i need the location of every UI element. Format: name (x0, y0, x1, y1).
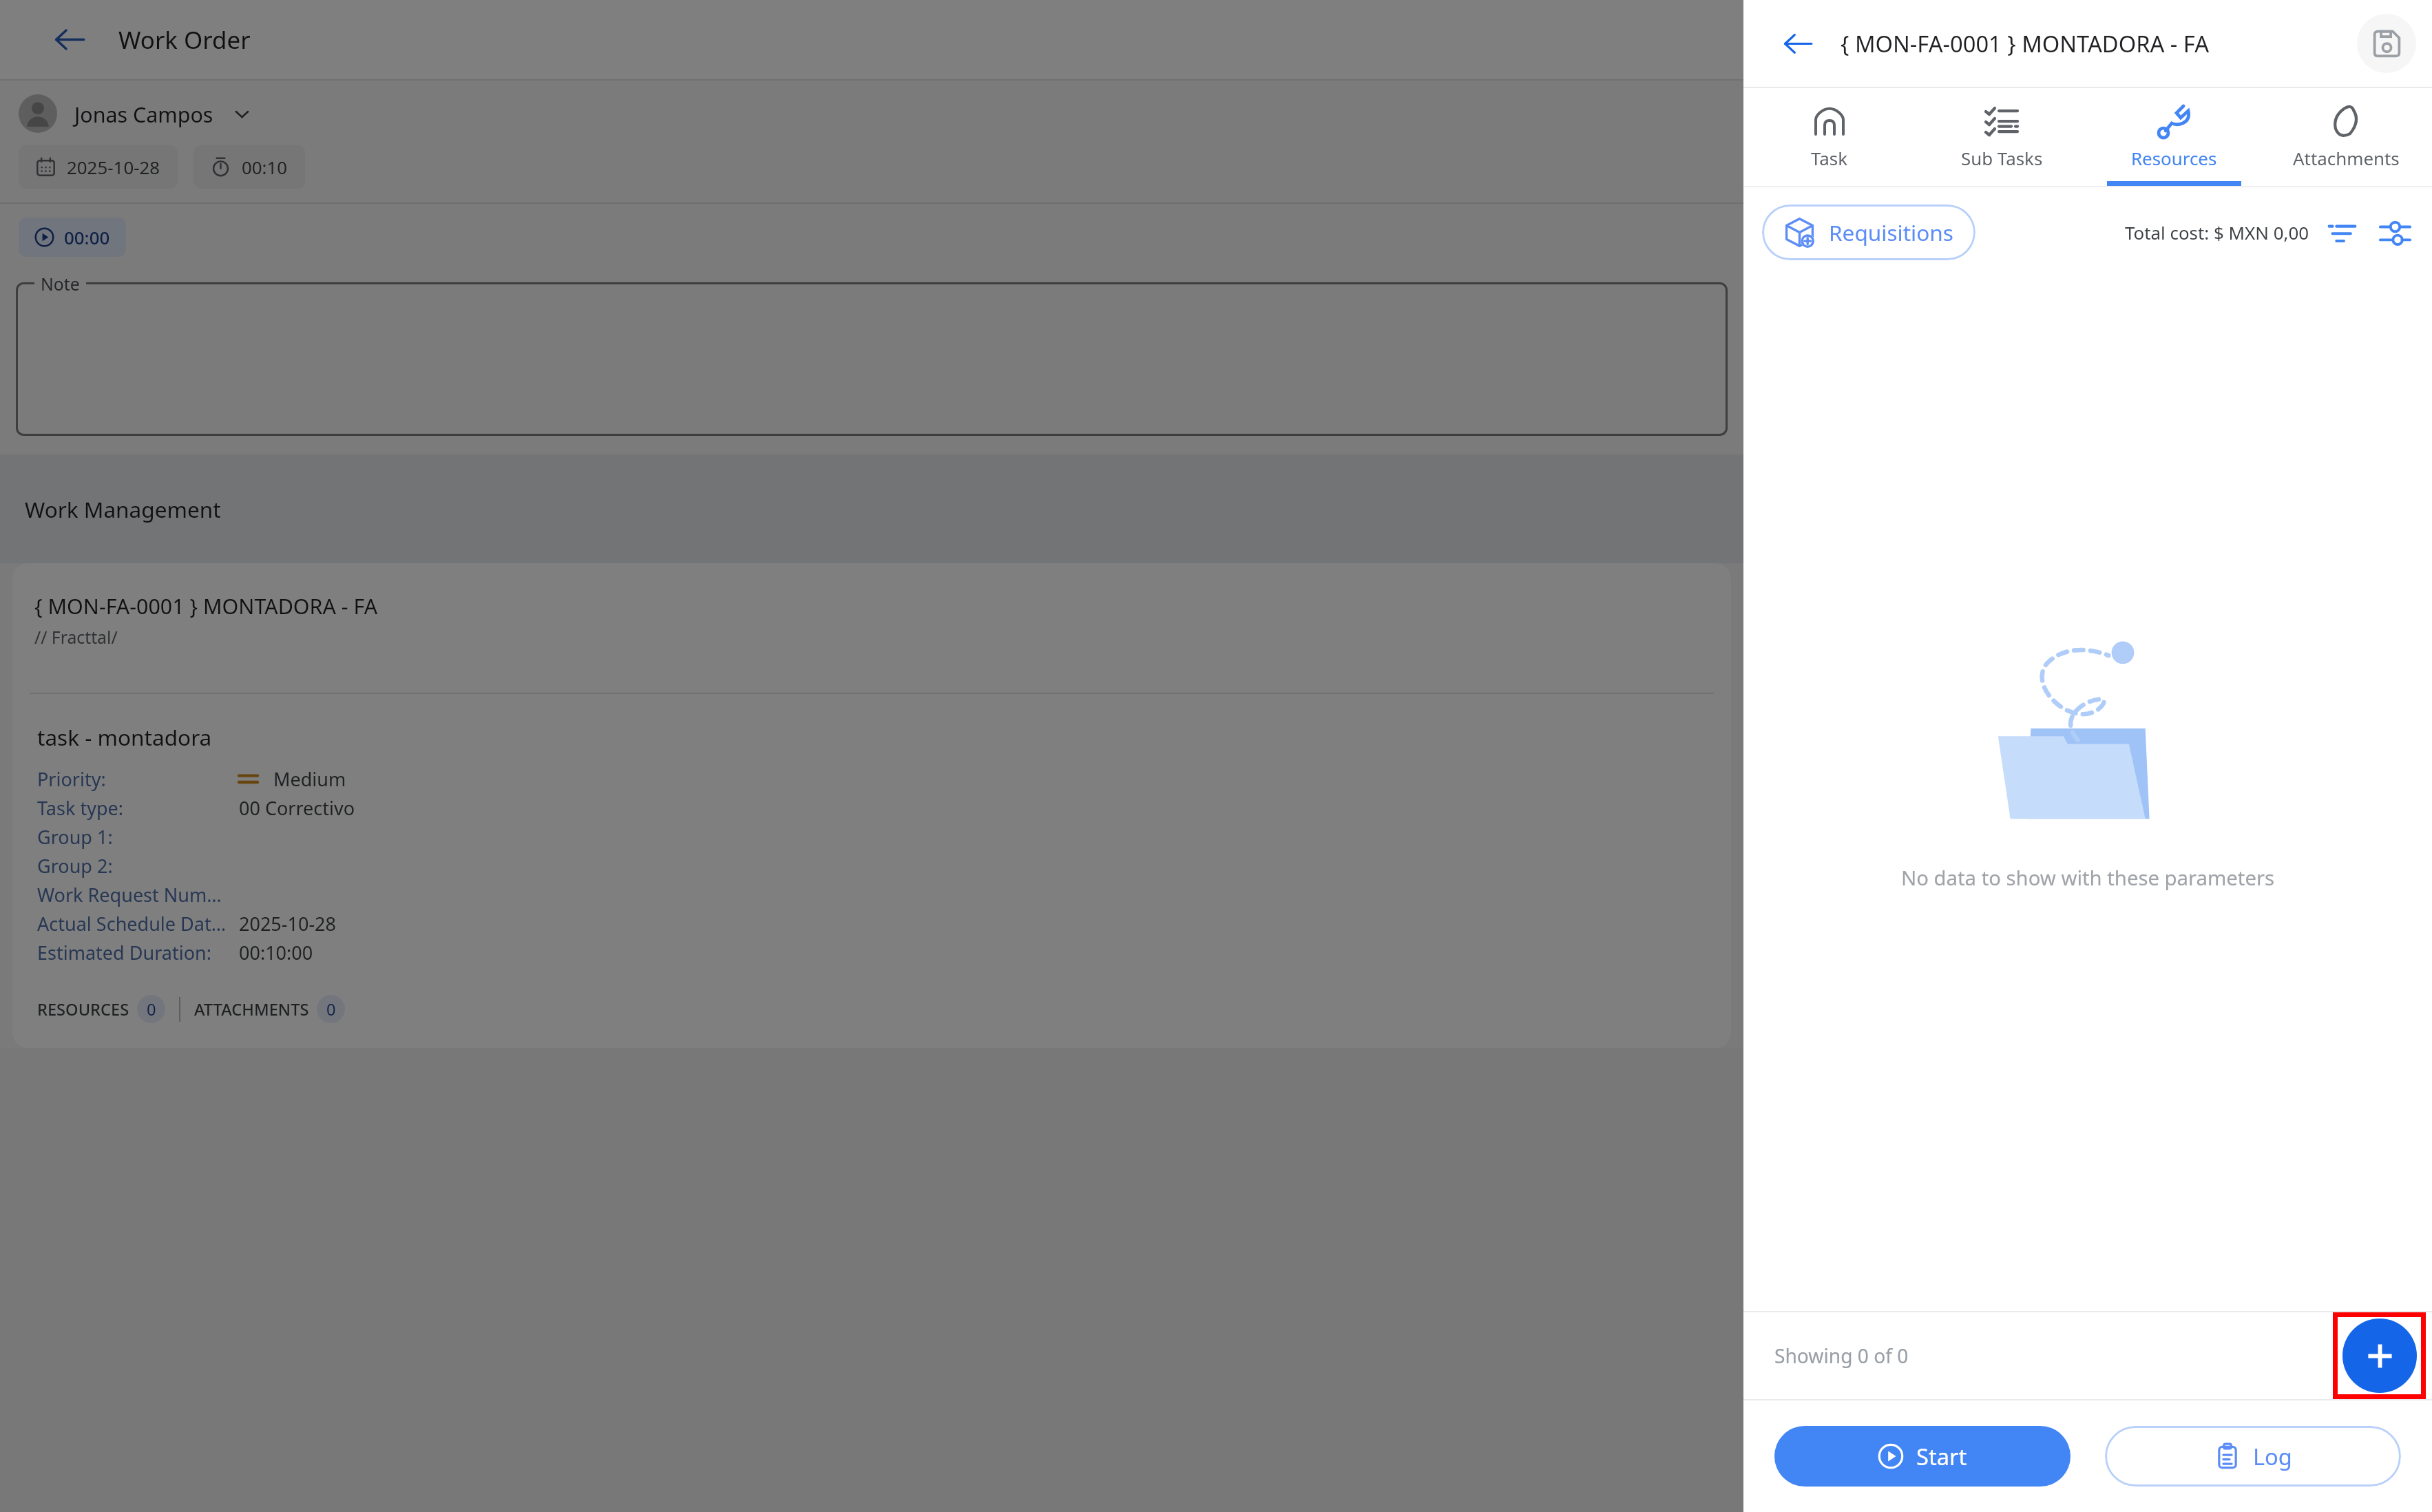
staticText: 0 (326, 998, 336, 1020)
staticText: Total cost: $ MXN 0,00 (2125, 220, 2309, 244)
staticText: Task type: (37, 795, 124, 821)
staticText: { MON-FA-0001 } MONTADORA - FA (34, 591, 378, 620)
staticText: Showing 0 of 0 (1774, 1343, 1909, 1369)
staticText: Attachments (2293, 146, 2400, 170)
staticText: No data to show with these parameters (1901, 864, 2275, 892)
button[interactable]: Resources (2088, 88, 2260, 186)
button[interactable]: Attachments (2260, 88, 2432, 186)
staticText: Work Request Num… (37, 882, 222, 907)
button[interactable]: Requisitions (1762, 204, 1975, 260)
staticText: Resources (2131, 146, 2217, 170)
staticText: Work Management (25, 494, 221, 524)
button[interactable]: Jonas Campos (19, 94, 1725, 133)
button[interactable]: Back (43, 13, 96, 66)
staticText: task - montadora (37, 722, 212, 752)
staticText: Medium (273, 766, 346, 792)
button[interactable]: Add (2342, 1319, 2417, 1393)
staticText: 00:10 (242, 155, 288, 179)
staticText: 00 Correctivo (239, 795, 355, 821)
button[interactable]: Start (1774, 1426, 2071, 1487)
staticText: 00:00 (64, 225, 110, 249)
staticText: Log (2253, 1441, 2292, 1471)
button[interactable]: Sub Tasks (1916, 88, 2088, 186)
staticText: Note (41, 273, 80, 296)
button[interactable]: Filter settings (2376, 214, 2413, 251)
staticText: Work Order (118, 23, 251, 56)
staticText: Estimated Duration: (37, 940, 211, 965)
staticText: Group 1: (37, 824, 113, 850)
staticText: // Fracttal/ (34, 626, 118, 649)
staticText: 00:10:00 (239, 940, 313, 965)
button[interactable]: { MON-FA-0001 } MONTADORA - FA (12, 563, 1731, 1048)
button[interactable]: 00:10 (193, 145, 305, 189)
staticText: 2025-10-28 (239, 911, 337, 936)
button[interactable]: Save (2357, 14, 2416, 73)
button[interactable]: Task (1743, 88, 1916, 186)
staticText: Start (1916, 1441, 1967, 1471)
button[interactable]: 2025-10-28 (19, 145, 178, 189)
staticText: Priority: (37, 766, 106, 792)
staticText: Sub Tasks (1961, 146, 2043, 170)
staticText: Group 2: (37, 853, 113, 879)
staticText: { MON-FA-0001 } MONTADORA - FA (1841, 28, 2210, 59)
button[interactable]: Back (1772, 17, 1825, 70)
staticText: Requisitions (1829, 218, 1953, 247)
staticText: 0 (147, 998, 156, 1020)
staticText: Jonas Campos (74, 100, 213, 128)
staticText: Task (1811, 146, 1848, 170)
button[interactable]: 00:00 (19, 218, 126, 257)
staticText: ATTACHMENTS (194, 998, 309, 1020)
staticText: RESOURCES (37, 998, 129, 1020)
staticText: 2025-10-28 (67, 155, 160, 179)
button[interactable]: Log (2105, 1426, 2401, 1487)
staticText: Actual Schedule Dat… (37, 911, 227, 936)
button[interactable]: Sort (2323, 214, 2360, 251)
